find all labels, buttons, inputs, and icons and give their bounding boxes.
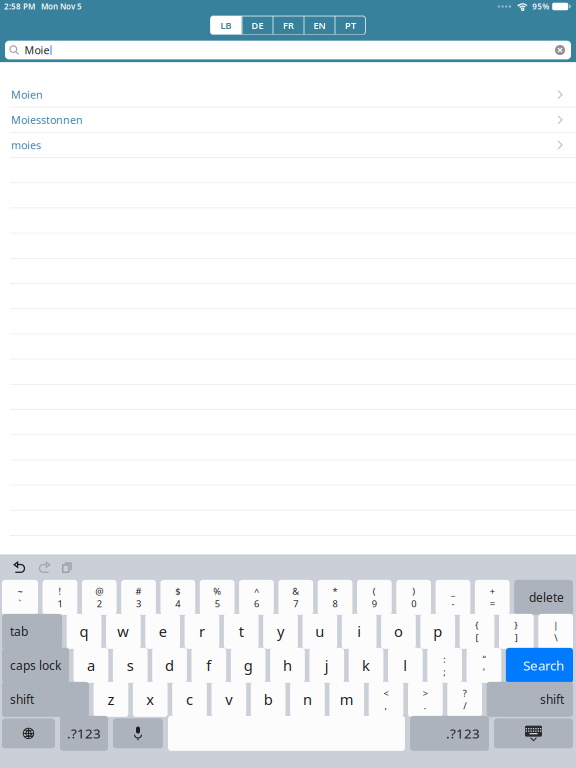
button[interactable]: Search — [506, 648, 573, 683]
button[interactable]: i — [342, 614, 376, 649]
button[interactable]: m — [329, 682, 364, 717]
staticText: 3 — [136, 597, 141, 610]
button[interactable]: e — [145, 614, 180, 649]
button[interactable]: tab — [2, 614, 62, 649]
button[interactable]: LB — [210, 16, 241, 35]
staticText: ( — [373, 585, 376, 597]
staticText: o — [394, 622, 403, 641]
button[interactable]: } — [499, 614, 534, 649]
button[interactable]: Redo — [32, 556, 56, 579]
button[interactable]: shift — [2, 682, 89, 717]
staticText: LB — [220, 19, 231, 32]
staticText: ` — [18, 597, 21, 610]
button[interactable]: { — [460, 614, 494, 649]
button[interactable]: Moien — [0, 82, 576, 107]
button[interactable]: f — [191, 648, 226, 683]
button[interactable]: : — [427, 648, 462, 683]
button[interactable]: | — [538, 614, 573, 649]
button[interactable]: moies — [0, 133, 576, 157]
staticText: # — [136, 585, 142, 597]
button[interactable]: EN — [303, 16, 334, 35]
button[interactable]: shift — [487, 682, 573, 717]
button[interactable]: r — [185, 614, 219, 649]
button[interactable]: ? — [447, 682, 482, 717]
staticText: moies — [11, 138, 41, 152]
staticText: b — [264, 690, 273, 709]
button[interactable]: delete — [514, 580, 573, 615]
button[interactable]: ) — [396, 580, 431, 615]
button[interactable]: a — [74, 648, 108, 683]
staticText: y — [277, 622, 284, 641]
button[interactable]: < — [369, 682, 403, 717]
button[interactable]: FR — [272, 16, 303, 35]
button[interactable]: caps lock — [2, 648, 69, 683]
staticText: 7 — [293, 597, 298, 610]
button[interactable]: ! — [43, 580, 77, 615]
button[interactable]: d — [152, 648, 187, 683]
button[interactable]: h — [270, 648, 305, 683]
staticText: { — [475, 619, 479, 631]
button[interactable]: l — [388, 648, 423, 683]
button[interactable]: z — [94, 682, 128, 717]
staticText: % — [213, 585, 221, 597]
button[interactable]: .?123 — [60, 716, 108, 751]
button[interactable]: Dictate — [113, 718, 163, 748]
button[interactable]: w — [106, 614, 141, 649]
button[interactable]: ^ — [239, 580, 274, 615]
button[interactable]: b — [251, 682, 285, 717]
button[interactable]: n — [290, 682, 325, 717]
button[interactable]: s — [113, 648, 148, 683]
staticText: l — [403, 656, 407, 675]
button[interactable]: $ — [160, 580, 195, 615]
staticText: d — [165, 656, 174, 675]
staticText: , — [385, 699, 388, 712]
button[interactable]: Clear text — [555, 45, 565, 55]
button[interactable]: % — [200, 580, 234, 615]
staticText: + — [490, 585, 495, 597]
staticText: f — [206, 656, 211, 675]
button[interactable]: @ — [82, 580, 117, 615]
button[interactable]: ( — [357, 580, 392, 615]
button[interactable]: * — [318, 580, 352, 615]
staticText: h — [283, 656, 292, 675]
button[interactable]: Moiesstonnen — [0, 108, 576, 132]
button[interactable]: k — [349, 648, 383, 683]
button[interactable]: q — [67, 614, 101, 649]
button[interactable]: Hide keyboard — [494, 718, 573, 748]
button[interactable]: .?123 — [410, 716, 489, 751]
button[interactable]: u — [302, 614, 337, 649]
button[interactable]: o — [381, 614, 416, 649]
button[interactable]: x — [133, 682, 168, 717]
button[interactable]: + — [475, 580, 510, 615]
button[interactable]: c — [172, 682, 207, 717]
button[interactable]: g — [231, 648, 265, 683]
staticText: ^ — [254, 585, 259, 597]
button[interactable]: ~ — [2, 580, 38, 615]
button[interactable]: y — [263, 614, 298, 649]
button[interactable]: Paste — [56, 556, 79, 579]
staticText: delete — [529, 589, 564, 605]
button[interactable]: PT — [334, 16, 365, 35]
button[interactable]: # — [121, 580, 156, 615]
staticText: 1 — [57, 597, 62, 610]
button[interactable]: p — [420, 614, 455, 649]
button[interactable]: _ — [436, 580, 470, 615]
button[interactable]: > — [408, 682, 443, 717]
staticText: r — [199, 622, 205, 641]
staticText: 95% — [532, 1, 549, 12]
button[interactable]: Next keyboard — [2, 718, 55, 748]
button[interactable]: v — [211, 682, 246, 717]
staticText: < — [384, 687, 389, 699]
staticText: = — [490, 597, 495, 610]
button[interactable]: t — [224, 614, 259, 649]
button[interactable]: j — [309, 648, 344, 683]
button[interactable]: & — [278, 580, 313, 615]
staticText: caps lock — [10, 657, 61, 673]
button[interactable]: DE — [241, 16, 272, 35]
staticText: - — [451, 597, 454, 610]
staticText: _ — [451, 585, 455, 597]
button[interactable]: Undo — [8, 556, 32, 579]
button[interactable]: “ — [467, 648, 501, 683]
staticText: “ — [482, 653, 485, 665]
